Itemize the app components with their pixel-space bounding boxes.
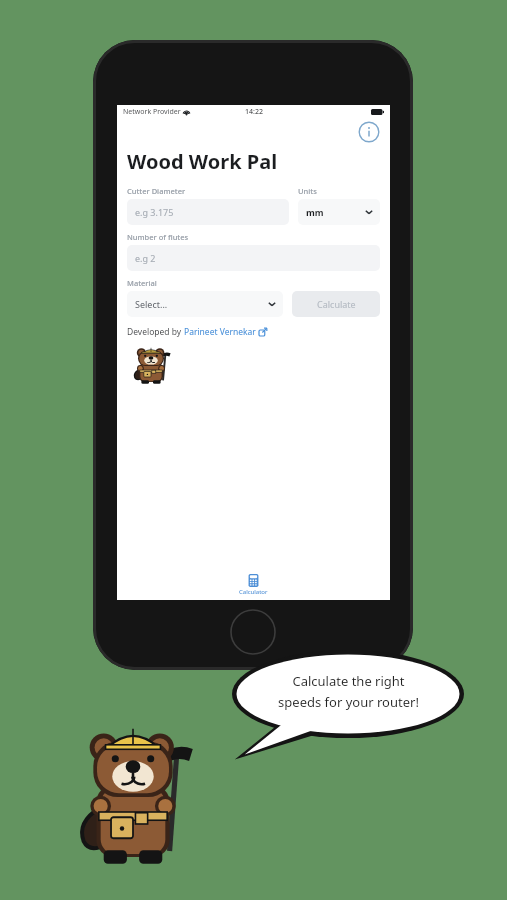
staticText: Select... bbox=[135, 298, 168, 310]
button[interactable]: Developed by bbox=[127, 326, 267, 338]
staticText: 14:22 bbox=[245, 107, 263, 117]
staticText: Units bbox=[298, 186, 317, 196]
button[interactable]: mm bbox=[298, 199, 380, 225]
button[interactable]: Select... bbox=[127, 291, 283, 317]
button[interactable]: Information bbox=[358, 121, 380, 143]
staticText: Parineet Vernekar bbox=[184, 326, 256, 338]
button[interactable]: Calculator bbox=[239, 574, 268, 596]
button[interactable]: e.g 3.175 bbox=[127, 199, 289, 225]
button[interactable]: e.g 2 bbox=[127, 245, 380, 271]
staticText: Calculate the right bbox=[292, 672, 405, 690]
staticText: speeds for your router! bbox=[278, 693, 419, 711]
staticText: Network Provider bbox=[123, 107, 181, 117]
staticText: Wood Work Pal bbox=[127, 148, 278, 175]
staticText: Calculate bbox=[317, 298, 356, 310]
staticText: Calculator bbox=[239, 588, 268, 596]
staticText: Developed by bbox=[127, 326, 184, 338]
staticText: Material bbox=[127, 278, 157, 288]
staticText: Number of flutes bbox=[127, 232, 189, 242]
staticText: mm bbox=[306, 206, 324, 218]
button[interactable]: Calculate bbox=[292, 291, 380, 317]
staticText: Cutter Diameter bbox=[127, 186, 186, 196]
staticText: e.g 2 bbox=[135, 252, 156, 264]
staticText: e.g 3.175 bbox=[135, 206, 174, 218]
